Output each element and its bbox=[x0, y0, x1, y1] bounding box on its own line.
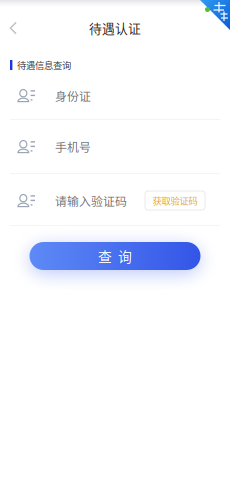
staticText: 请输入验证码 bbox=[55, 192, 127, 209]
staticText: 待遇信息查询 bbox=[17, 58, 71, 72]
staticText: 手机号 bbox=[55, 138, 91, 155]
button[interactable]: 获取验证码 bbox=[145, 191, 205, 210]
staticText: 获取验证码 bbox=[152, 194, 197, 207]
staticText: 查 询 bbox=[98, 246, 132, 266]
staticText: 待遇认证 bbox=[89, 19, 141, 37]
button[interactable]: Back bbox=[0, 12, 27, 44]
button[interactable]: 查 询 bbox=[29, 242, 200, 270]
staticText: 身份证 bbox=[55, 87, 91, 104]
